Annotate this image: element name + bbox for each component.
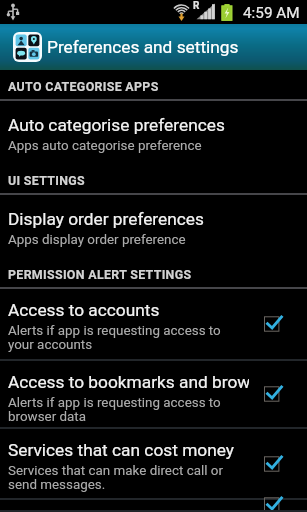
- staticText: 4:59 AM: [243, 4, 300, 22]
- button[interactable]: Access to bookmarks and browser data: [0, 361, 307, 429]
- staticText: Preferences and settings: [47, 37, 239, 57]
- button[interactable]: Toggle Access to bookmarks and browser d…: [251, 361, 307, 427]
- staticText: Apps display order preference: [8, 232, 186, 248]
- button[interactable]: Access to accounts: [0, 289, 307, 361]
- button[interactable]: Services that can cost money: [0, 429, 307, 500]
- button[interactable]: Auto categorise preferences: [0, 101, 307, 164]
- staticText: Alerts if app is requesting access to yo…: [8, 323, 221, 352]
- staticText: Access to accounts: [8, 300, 160, 320]
- button[interactable]: Display order preferences: [0, 195, 307, 258]
- staticText: PERMISSION ALERT SETTINGS: [8, 267, 192, 282]
- other: USB connected: [5, 3, 21, 21]
- button[interactable]: Toggle Services that can cost money: [251, 429, 307, 498]
- staticText: AUTO CATEGORISE APPS: [8, 79, 159, 94]
- staticText: Services that can make direct call or se…: [8, 463, 223, 492]
- staticText: Access to bookmarks and browser data: [8, 372, 249, 392]
- staticText: Auto categorise preferences: [8, 115, 225, 135]
- staticText: Display order preferences: [8, 209, 204, 229]
- staticText: Services that can cost money: [8, 440, 234, 460]
- button[interactable]: Toggle Access to accounts: [251, 289, 307, 359]
- button[interactable]: Preferences and settings: [0, 24, 307, 70]
- button[interactable]: Access to location info: [0, 500, 307, 512]
- staticText: R: [193, 0, 200, 12]
- button[interactable]: Toggle Access to location info: [251, 471, 307, 512]
- staticText: Alerts if app is requesting access to br…: [8, 395, 221, 424]
- staticText: UI SETTINGS: [8, 173, 86, 188]
- staticText: Apps auto categorise preference: [8, 138, 202, 154]
